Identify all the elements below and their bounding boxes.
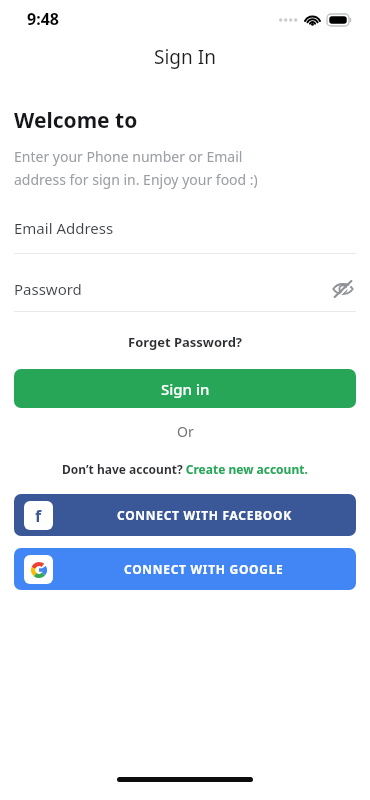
staticText: CONNECT WITH FACEBOOK bbox=[117, 507, 292, 523]
staticText: CONNECT WITH GOOGLE bbox=[124, 561, 284, 577]
staticText: Email Address bbox=[14, 218, 114, 238]
button[interactable]: Password bbox=[0, 276, 370, 312]
button[interactable]: CONNECT WITH GOOGLE bbox=[14, 548, 356, 590]
staticText: 9:48 bbox=[27, 8, 59, 30]
button[interactable]: Show password bbox=[330, 276, 356, 302]
button[interactable]: Forget Password? bbox=[118, 330, 253, 354]
staticText: address for sign in. Enjoy your food :) bbox=[14, 170, 258, 189]
staticText: Enter your Phone number or Email bbox=[14, 147, 243, 166]
staticText: Don’t have account? Create new account. bbox=[62, 461, 308, 477]
staticText: Sign In bbox=[154, 44, 216, 70]
button[interactable]: Sign in bbox=[14, 369, 356, 408]
staticText: Sign in bbox=[161, 379, 210, 399]
button[interactable]: Email Address bbox=[0, 218, 370, 254]
staticText: Forget Password? bbox=[128, 333, 243, 351]
staticText: Password bbox=[14, 279, 330, 299]
staticText: Welcome to bbox=[14, 106, 138, 135]
staticText: f bbox=[35, 505, 42, 527]
button[interactable]: f bbox=[14, 494, 356, 536]
staticText: Or bbox=[177, 422, 194, 441]
button[interactable]: Don’t have account? Create new account. bbox=[54, 458, 316, 480]
